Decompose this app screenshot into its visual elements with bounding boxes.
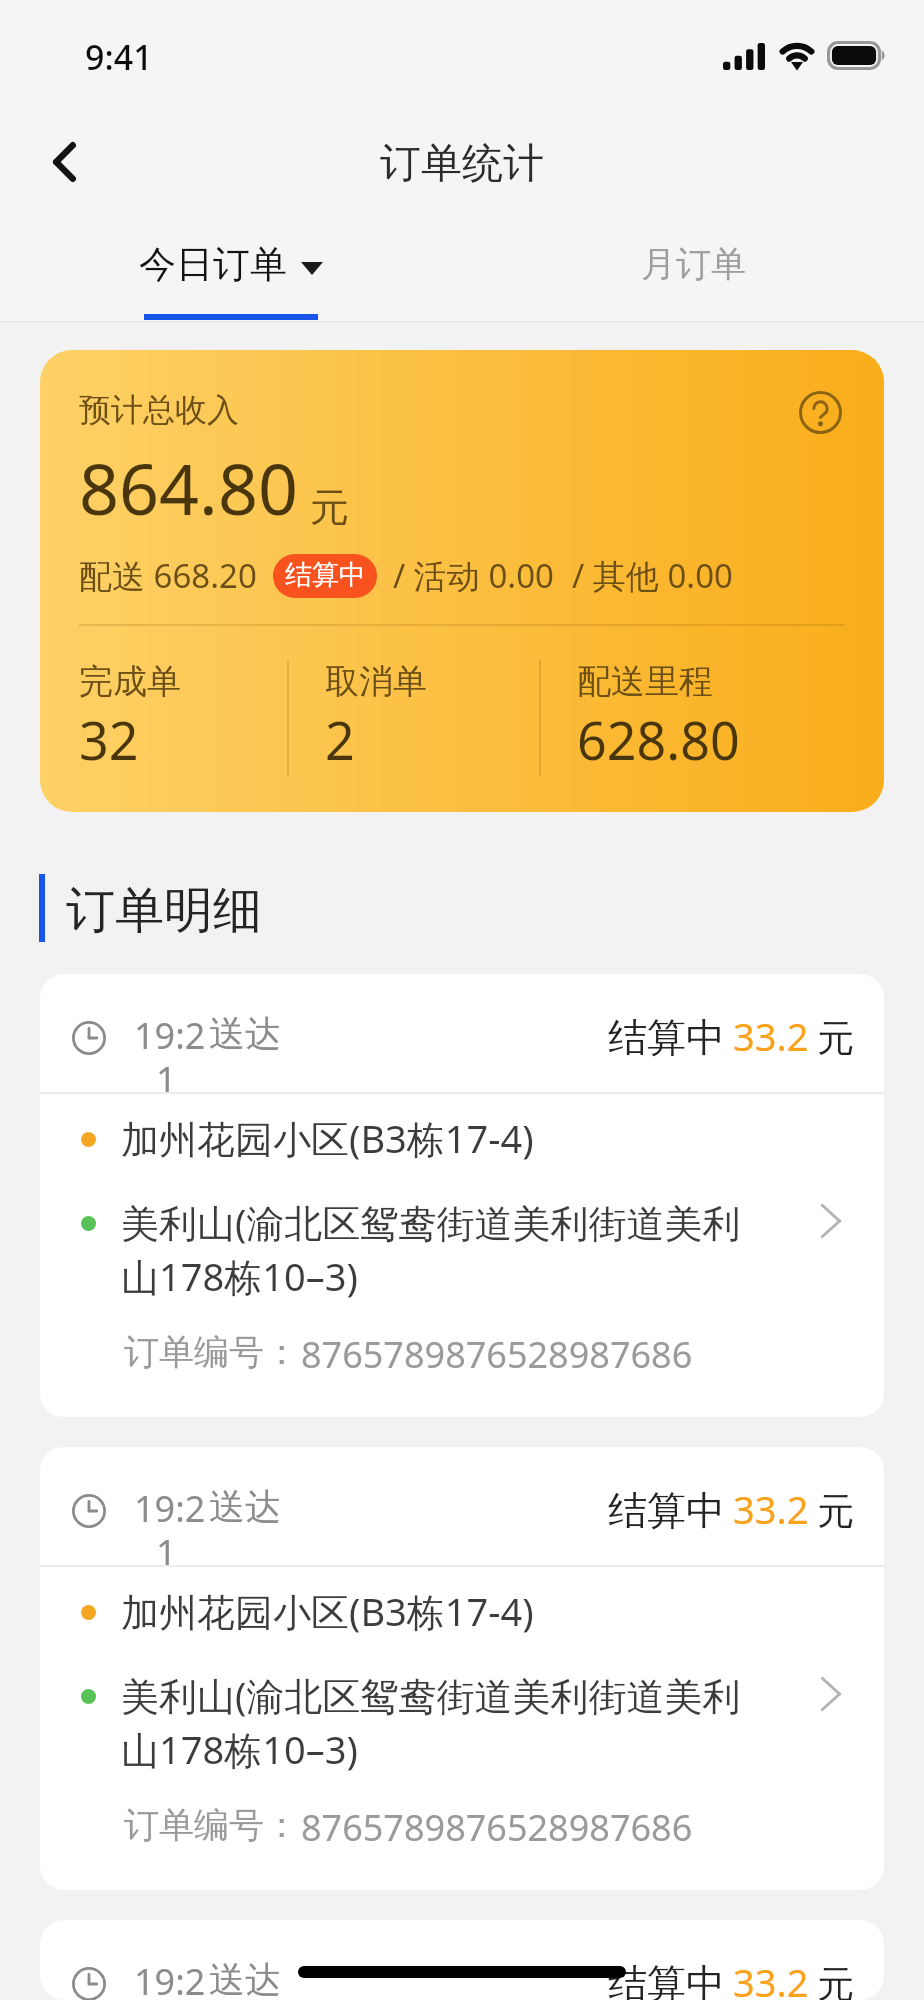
staticText: 预计总收入 bbox=[79, 390, 239, 430]
button[interactable]: Help bbox=[776, 368, 864, 456]
staticText: 32 bbox=[79, 704, 139, 775]
staticText: 33.2 bbox=[733, 1010, 809, 1062]
staticText: 元 bbox=[817, 1015, 854, 1062]
staticText: 送达 bbox=[209, 1484, 281, 1529]
button[interactable]: Back bbox=[12, 114, 116, 218]
button[interactable]: 月订单 bbox=[462, 222, 924, 322]
button[interactable]: 19:2 bbox=[40, 1447, 884, 1890]
staticText: 1 bbox=[156, 1528, 177, 1577]
staticText: 配送里程 bbox=[577, 660, 713, 703]
staticText: 结算中 bbox=[608, 1959, 725, 2000]
staticText: 加州花园小区(B3栋17-4) bbox=[121, 1585, 534, 1637]
button[interactable]: 预计总收入 bbox=[40, 350, 884, 812]
staticText: 元 bbox=[817, 1488, 854, 1535]
staticText: 33.2 bbox=[733, 1483, 809, 1535]
staticText: 8765789876528987686 bbox=[301, 1803, 693, 1852]
staticText: 订单统计 bbox=[380, 138, 544, 190]
staticText: 取消单 bbox=[325, 660, 427, 703]
staticText: 配送 668.20 bbox=[79, 553, 257, 598]
staticText: / 其他 0.00 bbox=[572, 553, 733, 598]
staticText: 美利山(渝北区鸳鸯街道美利街道美利山178栋10–3) bbox=[121, 1196, 761, 1302]
staticText: 1 bbox=[156, 1055, 177, 1104]
staticText: 结算中 bbox=[608, 1013, 725, 1062]
staticText: 8765789876528987686 bbox=[301, 1330, 693, 1379]
staticText: 864.80 bbox=[79, 440, 298, 535]
staticText: 结算中 bbox=[608, 1486, 725, 1535]
staticText: 9:41 bbox=[85, 34, 153, 80]
button[interactable]: 今日订单 bbox=[0, 222, 462, 322]
staticText: 月订单 bbox=[641, 242, 746, 286]
staticText: 628.80 bbox=[577, 704, 740, 775]
staticText: 元 bbox=[817, 1961, 854, 2000]
staticText: 送达 bbox=[209, 1957, 281, 2000]
staticText: 19:2 bbox=[134, 1011, 206, 1060]
staticText: 2 bbox=[325, 704, 355, 775]
staticText: 33.2 bbox=[733, 1956, 809, 2000]
staticText: / 活动 0.00 bbox=[393, 553, 554, 598]
staticText: 美利山(渝北区鸳鸯街道美利街道美利山178栋10–3) bbox=[121, 1669, 761, 1775]
button[interactable]: 19:2 bbox=[40, 1920, 884, 2000]
staticText: 今日订单 bbox=[139, 241, 287, 288]
staticText: 19:2 bbox=[134, 1957, 206, 2000]
staticText: 完成单 bbox=[79, 660, 181, 703]
staticText: 订单编号： bbox=[124, 1803, 299, 1847]
staticText: 送达 bbox=[209, 1011, 281, 1056]
staticText: 订单明细 bbox=[66, 880, 262, 942]
button[interactable]: 19:2 bbox=[40, 974, 884, 1417]
staticText: 结算中 bbox=[285, 558, 366, 592]
staticText: 加州花园小区(B3栋17-4) bbox=[121, 1112, 534, 1164]
staticText: 19:2 bbox=[134, 1484, 206, 1533]
staticText: 元 bbox=[310, 483, 349, 532]
staticText: 订单编号： bbox=[124, 1330, 299, 1374]
